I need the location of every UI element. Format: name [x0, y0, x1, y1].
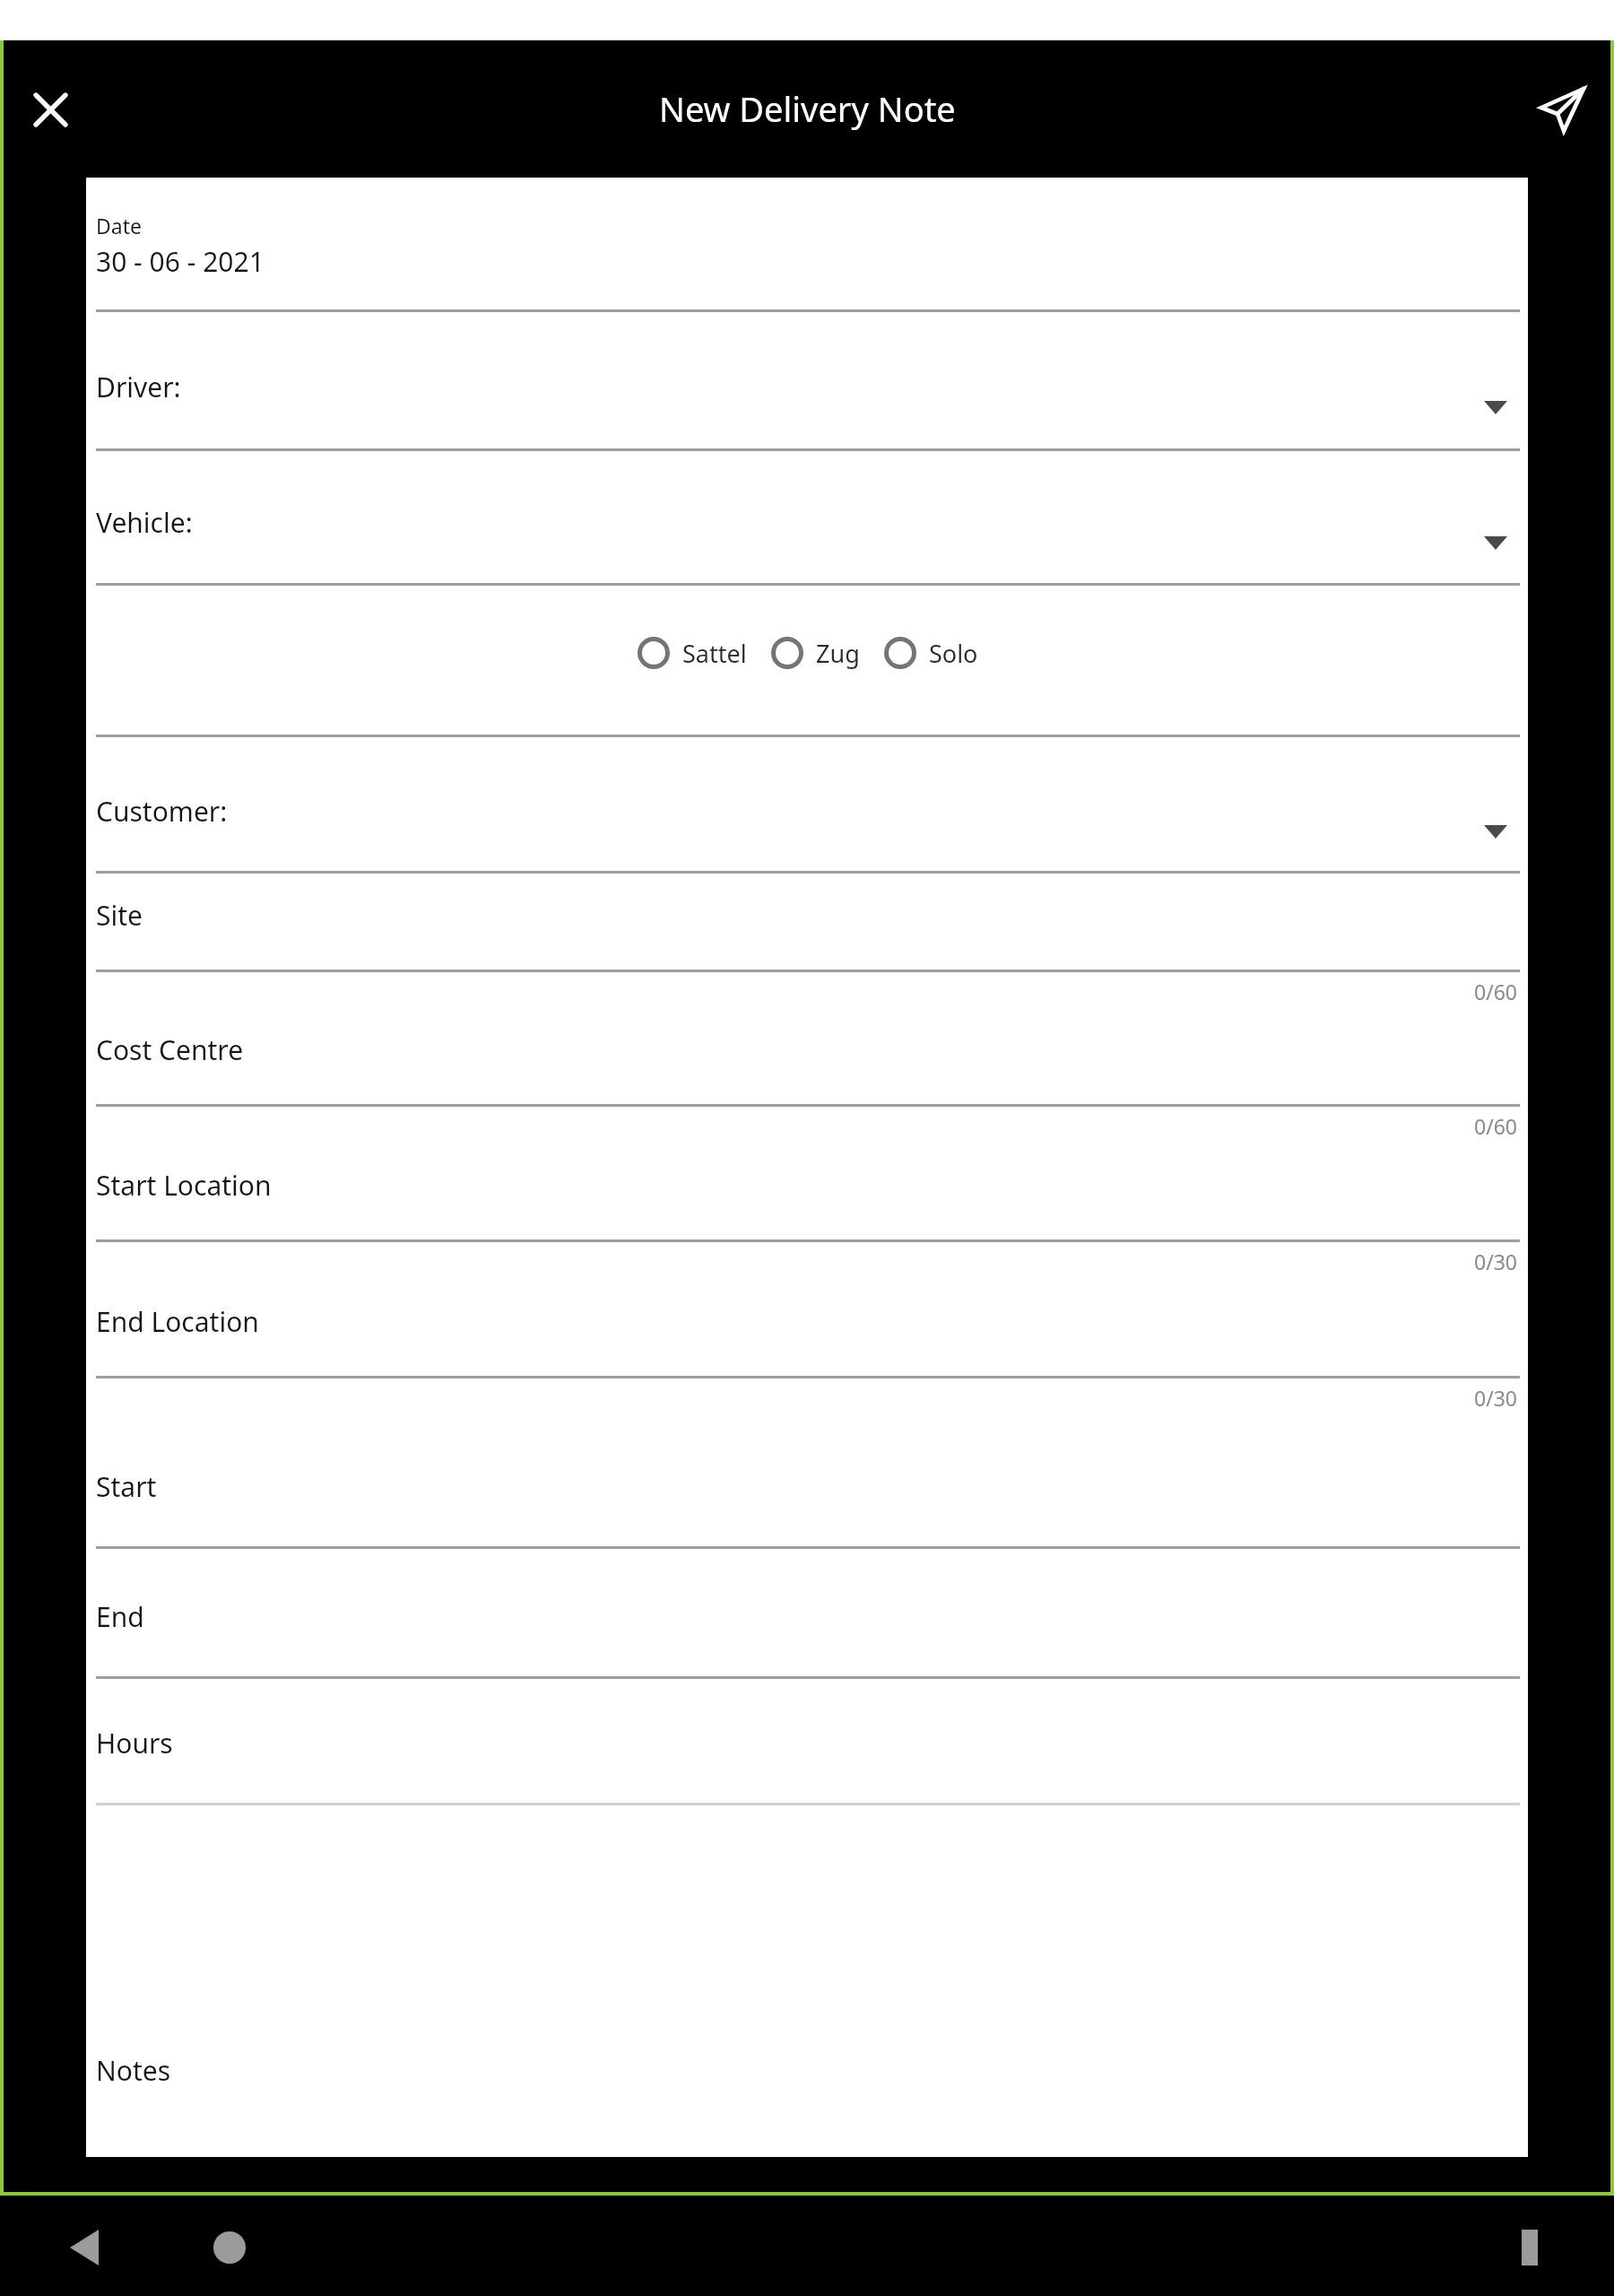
button[interactable]: End Location	[86, 1275, 1528, 1412]
staticText: Vehicle:	[96, 504, 193, 541]
staticText: Sattel	[682, 637, 747, 670]
button[interactable]: Start Location	[86, 1140, 1528, 1275]
staticText: 30 - 06 - 2021	[96, 243, 265, 280]
button[interactable]: Send	[1528, 75, 1596, 143]
staticText: End	[96, 1598, 144, 1635]
button[interactable]: Driver:	[86, 312, 1528, 451]
button[interactable]: Back	[52, 2215, 117, 2280]
button[interactable]: Hours	[86, 1679, 1528, 1805]
staticText: Notes	[96, 2052, 171, 2089]
button[interactable]: Close	[20, 79, 81, 140]
button[interactable]: Site	[86, 874, 1528, 1005]
staticText: Solo	[929, 637, 978, 670]
button[interactable]: Cost Centre	[86, 1005, 1528, 1140]
button[interactable]: Customer:	[86, 737, 1528, 874]
button[interactable]: Start	[86, 1412, 1528, 1549]
button[interactable]: Sattel	[637, 636, 747, 670]
staticText: Zug	[816, 637, 860, 670]
staticText: New Delivery Note	[659, 85, 956, 132]
button[interactable]: Notes	[86, 1805, 1528, 2157]
staticText: 0/30	[1474, 1384, 1518, 1412]
staticText: End Location	[96, 1303, 259, 1340]
button[interactable]: Vehicle:	[86, 451, 1528, 586]
staticText: Date	[96, 212, 142, 239]
button[interactable]: Date	[86, 178, 1528, 312]
button[interactable]: Zug	[770, 636, 860, 670]
staticText: 0/60	[1474, 978, 1518, 1005]
staticText: 0/60	[1474, 1112, 1518, 1140]
staticText: 0/30	[1474, 1248, 1518, 1275]
button[interactable]: Home	[197, 2215, 262, 2280]
staticText: Hours	[96, 1725, 173, 1761]
staticText: Site	[96, 897, 143, 934]
staticText: Start Location	[96, 1167, 272, 1204]
button[interactable]: End	[86, 1549, 1528, 1679]
staticText: Driver:	[96, 369, 181, 405]
button[interactable]: Solo	[883, 636, 978, 670]
staticText: Cost Centre	[96, 1031, 244, 1068]
button[interactable]: Recent apps	[1497, 2215, 1562, 2280]
staticText: Start	[96, 1468, 157, 1505]
staticText: Customer:	[96, 793, 228, 830]
